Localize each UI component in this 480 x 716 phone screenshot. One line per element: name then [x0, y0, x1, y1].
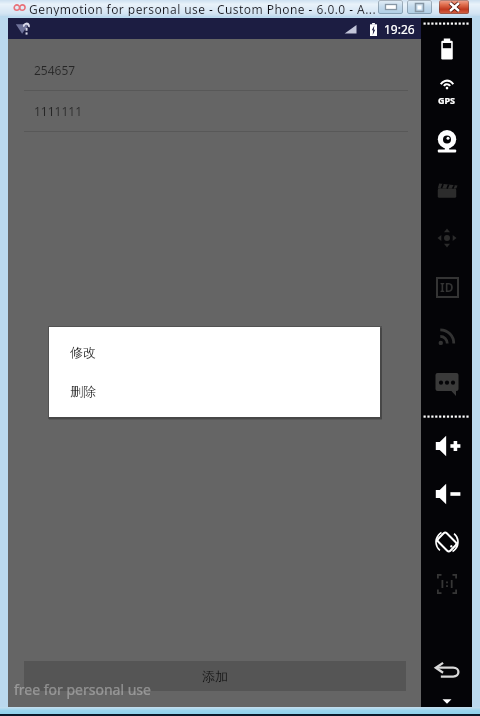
button[interactable]: SMS	[421, 361, 472, 405]
staticText: free for personal use	[14, 680, 151, 699]
button[interactable]: 修改	[49, 332, 380, 371]
button[interactable]: Back	[421, 649, 472, 693]
staticText: ID	[440, 279, 454, 295]
staticText: 添加	[202, 668, 228, 684]
staticText: 1111111	[34, 103, 83, 119]
staticText: 删除	[70, 383, 96, 399]
button[interactable]: Pixel perfect	[421, 562, 472, 606]
staticText: 修改	[70, 344, 96, 360]
button[interactable]: Close	[439, 0, 469, 14]
button[interactable]: Volume down	[421, 472, 472, 516]
button[interactable]: Screen recording	[421, 168, 472, 212]
button[interactable]: Collapse	[421, 679, 472, 716]
staticText: 19:26	[384, 21, 415, 37]
button[interactable]: 1111111	[8, 91, 421, 132]
button[interactable]: Battery	[421, 27, 472, 71]
button[interactable]: GPS	[421, 73, 472, 117]
button[interactable]: Minimize	[378, 0, 403, 14]
button[interactable]: 删除	[49, 371, 380, 410]
staticText: Genymotion for personal use - Custom Pho…	[29, 1, 377, 17]
button[interactable]: Maximize	[407, 0, 432, 14]
button[interactable]: Camera	[421, 120, 472, 164]
button[interactable]: Rotate	[421, 520, 472, 564]
button[interactable]: Network	[421, 313, 472, 357]
button[interactable]: Volume up	[421, 424, 472, 468]
staticText: 254657	[34, 62, 76, 78]
button[interactable]: Accelerometer	[421, 216, 472, 260]
button[interactable]: 添加	[24, 661, 406, 691]
staticText: GPS	[438, 94, 456, 106]
button[interactable]: Identifiers	[421, 265, 472, 309]
button[interactable]: 254657	[8, 50, 421, 91]
